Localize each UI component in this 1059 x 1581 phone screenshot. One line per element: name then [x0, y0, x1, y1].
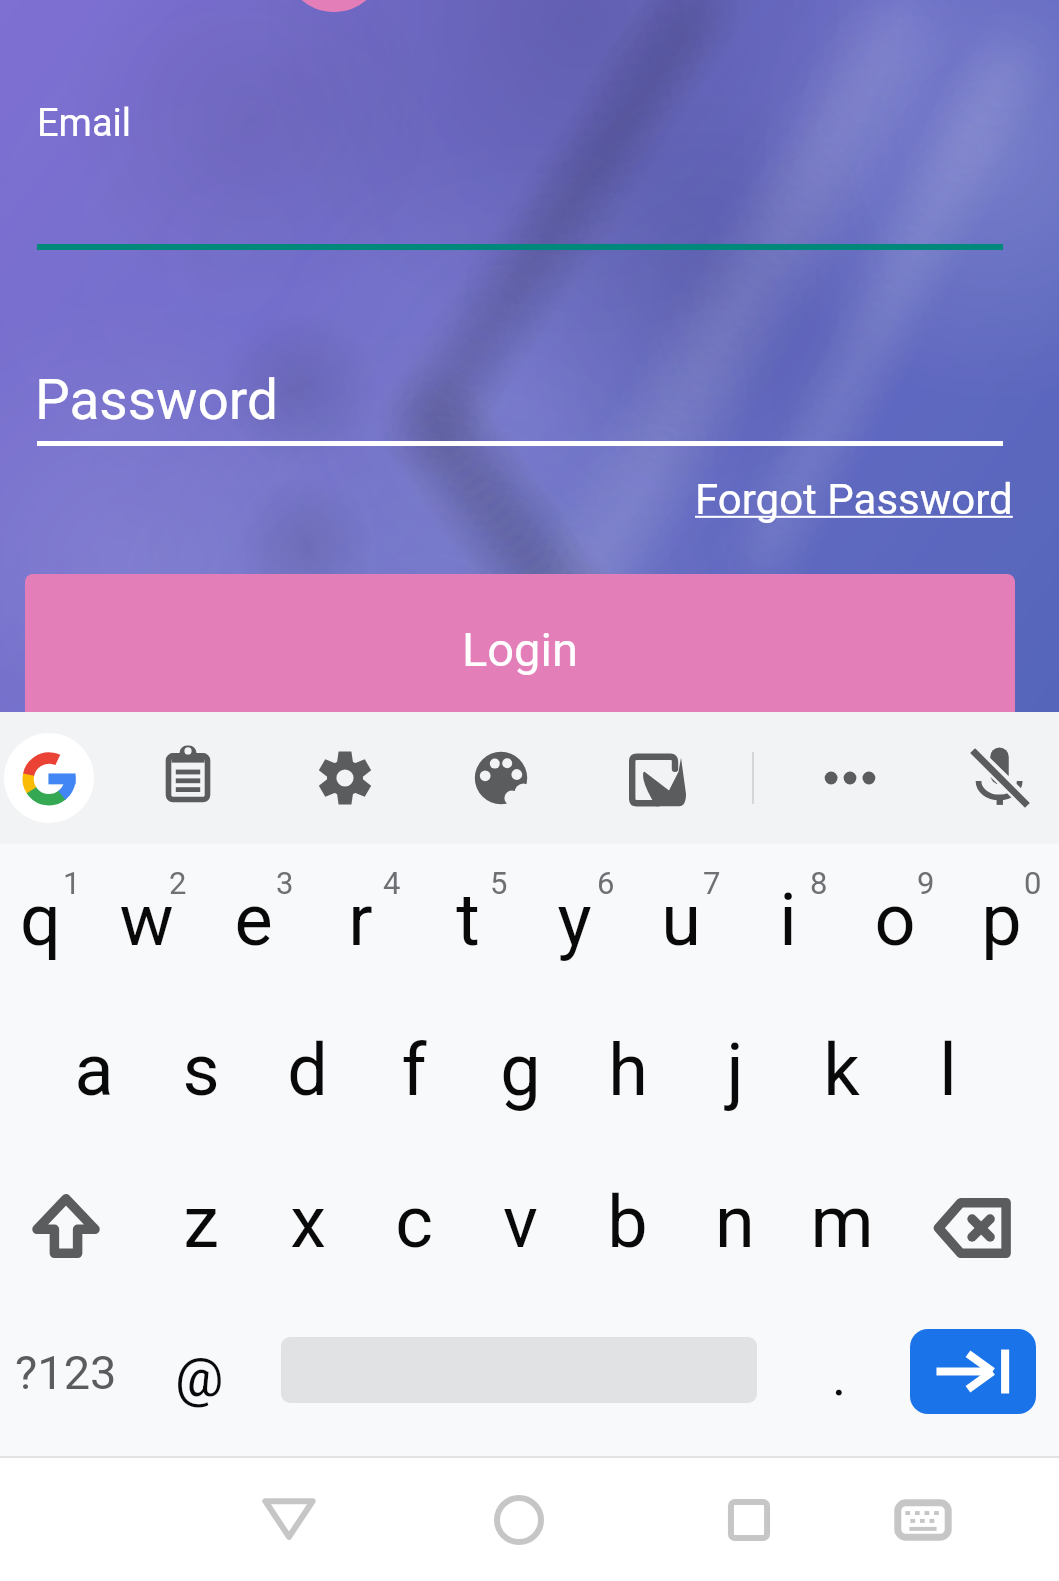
button[interactable]: Shift: [11, 1162, 121, 1282]
staticText: 3: [276, 865, 294, 901]
staticText: v: [503, 1180, 538, 1264]
button[interactable]: q: [0, 846, 94, 994]
button[interactable]: h: [574, 996, 681, 1144]
staticText: l: [939, 1028, 957, 1112]
staticText: z: [183, 1180, 219, 1264]
button[interactable]: Backspace: [912, 1167, 1032, 1277]
button[interactable]: k: [788, 996, 895, 1144]
staticText: 9: [917, 865, 935, 901]
button[interactable]: Switch keyboard: [881, 1478, 965, 1562]
button[interactable]: f: [360, 996, 467, 1144]
button[interactable]: Login: [25, 574, 1015, 724]
button[interactable]: e: [200, 846, 307, 994]
staticText: g: [500, 1028, 541, 1112]
staticText: a: [74, 1028, 114, 1112]
staticText: n: [715, 1180, 755, 1264]
button[interactable]: x: [254, 1148, 361, 1296]
button[interactable]: Clipboard: [144, 734, 232, 822]
button[interactable]: j: [681, 996, 788, 1144]
button[interactable]: z: [147, 1148, 254, 1296]
staticText: t: [456, 878, 480, 962]
button[interactable]: w: [93, 846, 200, 994]
button[interactable]: Next: [910, 1329, 1036, 1414]
button[interactable]: y: [521, 846, 628, 994]
staticText: y: [557, 878, 592, 962]
button[interactable]: .: [789, 1321, 889, 1431]
staticText: p: [981, 878, 1022, 962]
button[interactable]: Themes: [457, 734, 545, 822]
staticText: b: [607, 1180, 648, 1264]
button[interactable]: l: [894, 996, 1001, 1144]
button[interactable]: s: [147, 996, 254, 1144]
staticText: s: [182, 1028, 220, 1112]
staticText: 8: [810, 865, 828, 901]
button[interactable]: Google: [4, 733, 94, 823]
staticText: u: [661, 878, 701, 962]
button[interactable]: Forgot Password: [691, 473, 1017, 526]
button[interactable]: a: [40, 996, 147, 1144]
staticText: Forgot Password: [695, 475, 1013, 524]
button[interactable]: p: [948, 846, 1055, 994]
staticText: 7: [703, 865, 721, 901]
staticText: Password: [35, 368, 278, 432]
staticText: 0: [1024, 865, 1042, 901]
staticText: j: [726, 1028, 744, 1112]
staticText: x: [290, 1180, 326, 1264]
staticText: 4: [383, 865, 401, 901]
staticText: ?123: [15, 1345, 117, 1400]
staticText: i: [779, 878, 797, 962]
staticText: r: [348, 878, 373, 962]
button[interactable]: Back: [247, 1478, 331, 1562]
staticText: c: [395, 1180, 433, 1264]
button[interactable]: Stickers: [611, 734, 699, 822]
button[interactable]: @: [144, 1322, 254, 1432]
button[interactable]: n: [681, 1148, 788, 1296]
button[interactable]: m: [788, 1148, 895, 1296]
button[interactable]: Home: [477, 1478, 561, 1562]
button[interactable]: o: [841, 846, 948, 994]
button[interactable]: r: [307, 846, 414, 994]
button[interactable]: d: [254, 996, 361, 1144]
staticText: d: [287, 1028, 328, 1112]
staticText: Email: [37, 101, 132, 146]
staticText: m: [810, 1180, 874, 1264]
button[interactable]: ?123: [0, 1317, 141, 1427]
button[interactable]: g: [467, 996, 574, 1144]
button[interactable]: u: [627, 846, 734, 994]
button[interactable]: t: [414, 846, 521, 994]
staticText: w: [119, 878, 174, 962]
staticText: Login: [462, 622, 578, 677]
staticText: 2: [169, 865, 187, 901]
staticText: k: [823, 1028, 860, 1112]
staticText: 6: [597, 865, 615, 901]
staticText: q: [20, 878, 61, 962]
button[interactable]: i: [734, 846, 841, 994]
staticText: e: [234, 878, 273, 962]
button[interactable]: More options: [806, 734, 894, 822]
button[interactable]: Voice input off: [956, 734, 1044, 822]
staticText: .: [832, 1345, 847, 1408]
staticText: 1: [63, 865, 81, 901]
staticText: @: [175, 1346, 224, 1409]
button[interactable]: v: [467, 1148, 574, 1296]
staticText: f: [401, 1028, 427, 1112]
staticText: h: [608, 1028, 648, 1112]
button[interactable]: b: [574, 1148, 681, 1296]
button[interactable]: c: [360, 1148, 467, 1296]
button[interactable]: Recents: [707, 1478, 791, 1562]
staticText: o: [874, 878, 916, 962]
staticText: 5: [490, 865, 508, 901]
button[interactable]: Settings: [301, 734, 389, 822]
